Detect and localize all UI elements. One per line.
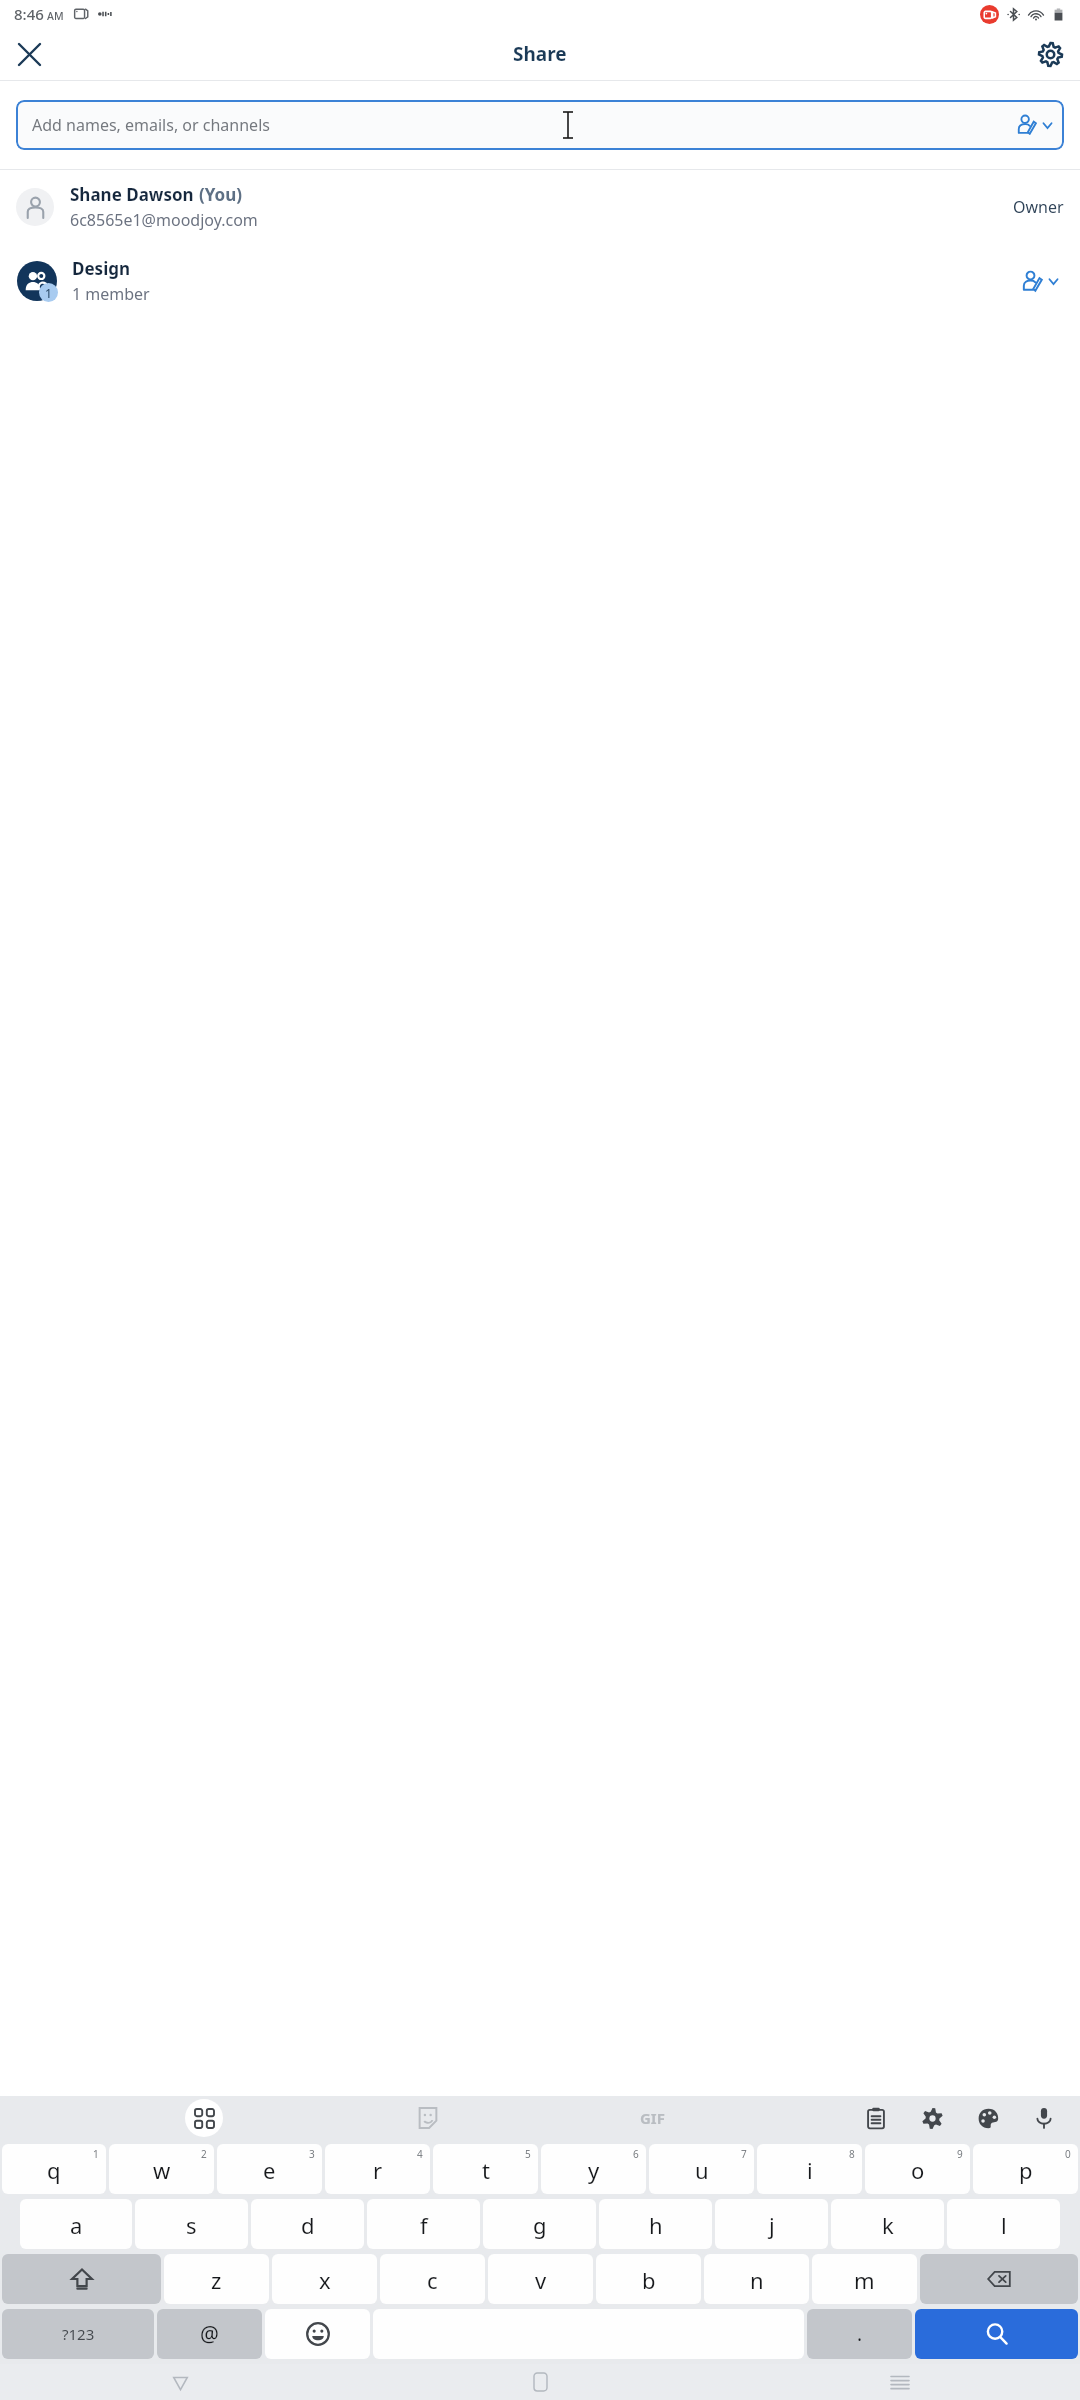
staticText: y (588, 2155, 600, 2185)
button[interactable]: y (541, 2144, 646, 2194)
button[interactable]: Themes (960, 2096, 1016, 2140)
button[interactable]: l (947, 2199, 1060, 2249)
staticText: f (420, 2210, 428, 2240)
button[interactable]: Stickers (400, 2096, 456, 2140)
button[interactable]: j (715, 2199, 828, 2249)
staticText: s (186, 2210, 197, 2240)
staticText: 6 (633, 2147, 639, 2161)
button[interactable]: Settings (1026, 30, 1074, 78)
staticText: GIF (640, 2108, 665, 2128)
staticText: 6c8565e1@moodjoy.com (70, 209, 258, 231)
staticText: j (769, 2210, 775, 2240)
staticText: 9 (957, 2147, 963, 2161)
staticText: a (70, 2210, 83, 2240)
button[interactable]: u (649, 2144, 754, 2194)
button[interactable]: o (865, 2144, 970, 2194)
button[interactable]: c (380, 2254, 485, 2304)
button[interactable]: ?123 (2, 2309, 154, 2359)
staticText: Owner (1013, 196, 1064, 218)
button[interactable]: Change permissions (1016, 264, 1064, 299)
button[interactable]: Clipboard (848, 2096, 904, 2140)
staticText: 0 (1065, 2147, 1071, 2161)
staticText: 8:46 (14, 4, 44, 24)
staticText: v (535, 2265, 547, 2295)
staticText: 5 (525, 2147, 531, 2161)
button[interactable]: 1 (0, 244, 1080, 318)
staticText: n (750, 2265, 764, 2295)
staticText: l (1001, 2210, 1007, 2240)
staticText: 1 (93, 2147, 99, 2161)
button[interactable]: i (757, 2144, 862, 2194)
staticText: 1 member (72, 283, 150, 305)
button[interactable]: . (807, 2309, 912, 2359)
button[interactable]: a (20, 2199, 132, 2249)
staticText: o (911, 2155, 925, 2185)
staticText: x (319, 2265, 331, 2295)
button[interactable]: Home (360, 2364, 720, 2400)
staticText: u (695, 2155, 709, 2185)
staticText: Shane Dawson (70, 183, 194, 206)
staticText: r (373, 2155, 383, 2185)
button[interactable]: e (217, 2144, 322, 2194)
button[interactable]: Shift (2, 2254, 161, 2304)
staticText: 7 (741, 2147, 747, 2161)
button[interactable]: f (367, 2199, 480, 2249)
staticText: ?123 (62, 2324, 95, 2344)
staticText: . (857, 2321, 863, 2347)
staticText: m (854, 2265, 875, 2295)
staticText: p (1019, 2155, 1033, 2185)
button[interactable]: Toolbox (8, 2096, 400, 2140)
staticText: q (47, 2155, 61, 2185)
staticText: i (807, 2155, 813, 2185)
button[interactable]: q (2, 2144, 106, 2194)
staticText: z (211, 2265, 222, 2295)
button[interactable]: z (164, 2254, 269, 2304)
staticText: b (642, 2265, 656, 2295)
staticText: @ (200, 2320, 219, 2349)
button[interactable]: Add names, emails, or channels (16, 100, 1064, 150)
staticText: Share (513, 41, 567, 67)
staticText: w (153, 2155, 171, 2185)
staticText: 8 (849, 2147, 855, 2161)
staticText: Add names, emails, or channels (32, 114, 270, 136)
staticText: Design (72, 257, 131, 280)
staticText: 1 (45, 285, 52, 301)
staticText: (You) (199, 183, 242, 206)
button[interactable]: w (109, 2144, 214, 2194)
staticText: t (482, 2155, 490, 2185)
staticText: 4 (417, 2147, 423, 2161)
button[interactable]: Back (0, 2364, 360, 2400)
button[interactable]: Shane Dawson (0, 170, 1080, 244)
button[interactable]: Search (915, 2309, 1078, 2359)
staticText: k (882, 2210, 894, 2240)
button[interactable]: k (831, 2199, 944, 2249)
button[interactable]: Keyboard settings (904, 2096, 960, 2140)
button[interactable]: h (599, 2199, 712, 2249)
button[interactable]: t (433, 2144, 538, 2194)
staticText: 2 (201, 2147, 207, 2161)
button[interactable]: x (272, 2254, 377, 2304)
button[interactable]: At sign (157, 2309, 262, 2359)
button[interactable]: v (488, 2254, 593, 2304)
button[interactable]: Recent apps (720, 2364, 1080, 2400)
staticText: d (301, 2210, 315, 2240)
staticText: 3 (309, 2147, 315, 2161)
button[interactable]: p (973, 2144, 1078, 2194)
button[interactable]: g (483, 2199, 596, 2249)
button[interactable]: Emoji (265, 2309, 370, 2359)
staticText: e (263, 2155, 276, 2185)
staticText: c (427, 2265, 438, 2295)
button[interactable]: s (135, 2199, 248, 2249)
button[interactable]: Close (5, 30, 53, 78)
staticText: h (649, 2210, 663, 2240)
staticText: g (533, 2210, 547, 2240)
button[interactable]: d (251, 2199, 364, 2249)
button[interactable]: n (704, 2254, 809, 2304)
button[interactable]: Voice input (1016, 2096, 1072, 2140)
button[interactable]: r (325, 2144, 430, 2194)
button[interactable]: GIF (456, 2096, 848, 2140)
button[interactable]: b (596, 2254, 701, 2304)
button[interactable]: m (812, 2254, 917, 2304)
button[interactable]: Backspace (920, 2254, 1078, 2304)
